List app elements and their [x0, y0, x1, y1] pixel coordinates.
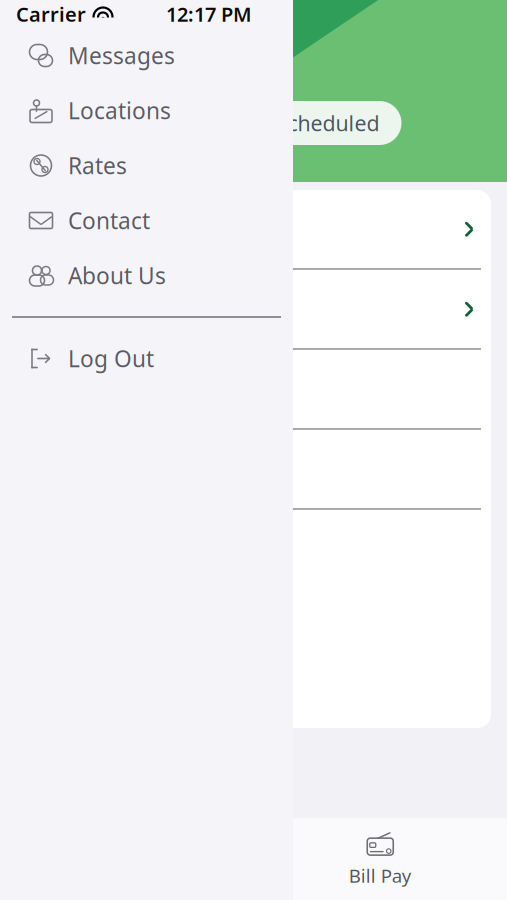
button[interactable] [16, 350, 491, 430]
button[interactable]: About Us [0, 248, 293, 303]
button[interactable]: Scheduled [253, 101, 401, 145]
button[interactable]: Locations [0, 83, 293, 138]
staticText: Locations [68, 95, 171, 125]
staticText: Rates [68, 150, 127, 180]
button[interactable] [16, 190, 491, 270]
button[interactable]: Rates [0, 138, 293, 193]
staticText: Bill Pay [349, 863, 412, 888]
staticText: Pending [138, 109, 221, 137]
staticText: Messages [68, 40, 175, 70]
staticText: 12:17 PM [166, 1, 252, 27]
staticText: Scheduled [275, 109, 379, 137]
staticText: About Us [68, 260, 166, 290]
staticText: Carrier [16, 1, 86, 27]
button[interactable] [16, 430, 491, 510]
staticText: Log Out [68, 343, 154, 373]
button[interactable]: Contact [0, 193, 293, 248]
button[interactable]: Log Out [0, 331, 293, 386]
button[interactable]: Bill Pay [253, 818, 507, 900]
button[interactable]: Messages [0, 28, 293, 83]
staticText: Contact [68, 205, 150, 235]
button[interactable]: Pending [105, 101, 253, 145]
button[interactable] [16, 270, 491, 350]
